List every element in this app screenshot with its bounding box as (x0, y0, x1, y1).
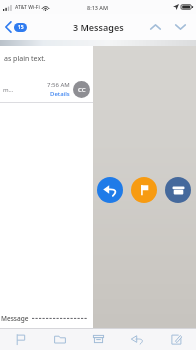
staticText: Message (1, 314, 29, 323)
button[interactable]: Back, 15 unread (0, 17, 33, 37)
staticText: 8:13 AM (87, 4, 109, 11)
button[interactable]: Flag (131, 177, 157, 203)
staticText: 3 Messages (73, 21, 124, 33)
staticText: m… (3, 86, 14, 94)
button[interactable]: Reply (118, 328, 157, 350)
button[interactable]: Reply (97, 177, 123, 203)
button[interactable]: Compose (157, 328, 196, 350)
button[interactable]: Contact CC (73, 81, 90, 98)
button[interactable]: Archive (165, 177, 191, 203)
button[interactable]: Next message (170, 19, 191, 35)
button[interactable]: Move to folder (40, 328, 79, 350)
staticText: as plain text. (4, 54, 46, 64)
button[interactable]: Flag (0, 328, 40, 350)
button[interactable]: Previous message (145, 19, 166, 35)
staticText: 15 (18, 24, 24, 31)
staticText: CC (78, 86, 86, 94)
staticText: AT&T Wi-Fi (15, 4, 40, 11)
staticText: 7:56 AM (47, 81, 70, 89)
button[interactable]: Archive (79, 328, 118, 350)
button[interactable]: Details (50, 90, 70, 98)
